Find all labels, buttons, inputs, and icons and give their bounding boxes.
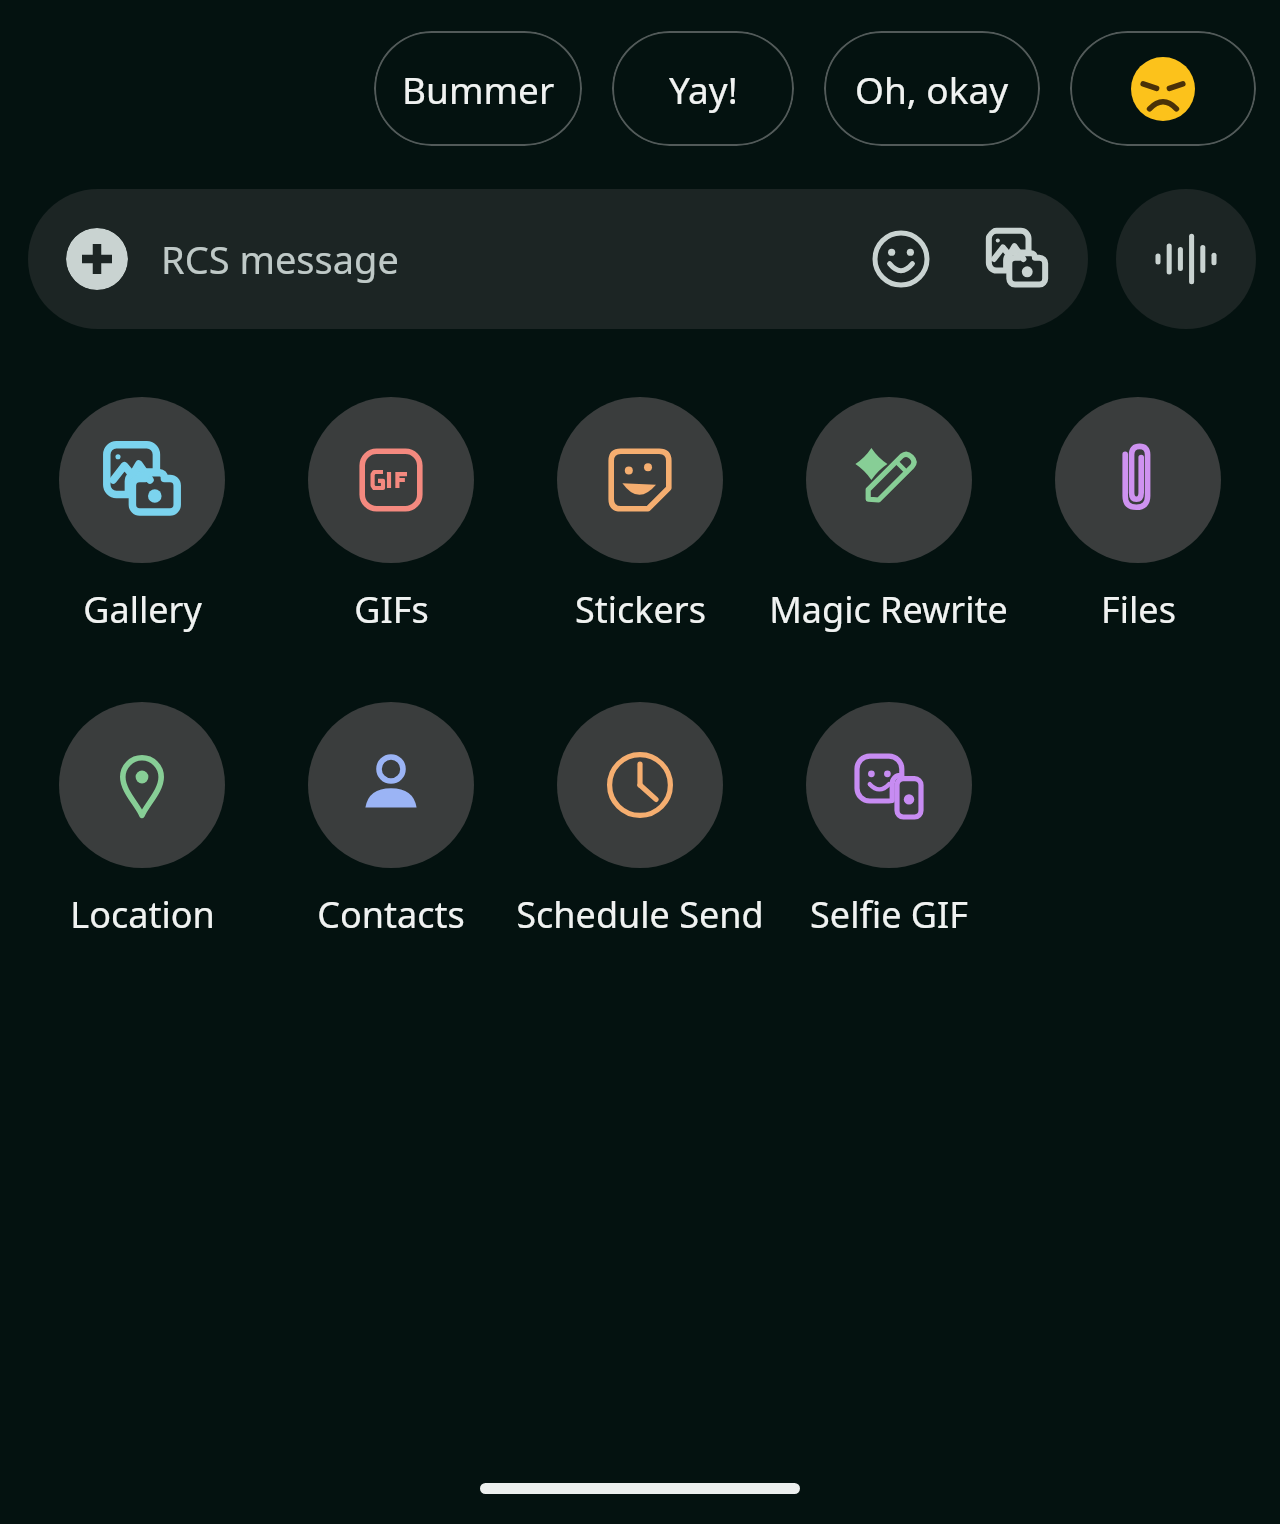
button[interactable]: GIFs	[308, 397, 474, 634]
button[interactable]: Location	[59, 702, 225, 939]
staticText: Stickers	[575, 585, 706, 634]
button[interactable]: Yay!	[612, 31, 794, 146]
staticText: Bummer	[402, 64, 555, 114]
staticText: GIFs	[354, 585, 429, 634]
button[interactable]: Files	[1055, 397, 1221, 634]
button[interactable]: Disappointed face reaction	[1070, 31, 1256, 146]
button[interactable]: Open gallery	[978, 220, 1056, 298]
staticText: RCS message	[161, 233, 399, 285]
staticText: Schedule Send	[516, 890, 764, 939]
staticText: Gallery	[83, 585, 202, 634]
button[interactable]: Contacts	[308, 702, 474, 939]
staticText: Yay!	[669, 64, 738, 114]
button[interactable]: Add attachment	[66, 228, 128, 290]
button[interactable]: Add attachment	[28, 189, 1088, 329]
staticText: Location	[70, 890, 215, 939]
button[interactable]: Magic Rewrite	[769, 397, 1008, 634]
button[interactable]: Record voice message	[1116, 189, 1256, 329]
button[interactable]: Oh, okay	[824, 31, 1040, 146]
button[interactable]: Schedule Send	[516, 702, 764, 939]
staticText: Contacts	[317, 890, 465, 939]
staticText: Selfie GIF	[810, 890, 968, 939]
button[interactable]: Emoji	[864, 222, 938, 296]
button[interactable]: Stickers	[557, 397, 723, 634]
staticText: Files	[1101, 585, 1176, 634]
button[interactable]: Selfie GIF	[806, 702, 972, 939]
staticText: Oh, okay	[855, 64, 1009, 114]
staticText: Magic Rewrite	[769, 585, 1008, 634]
button[interactable]: Bummer	[374, 31, 582, 146]
button[interactable]: Gallery	[59, 397, 225, 634]
